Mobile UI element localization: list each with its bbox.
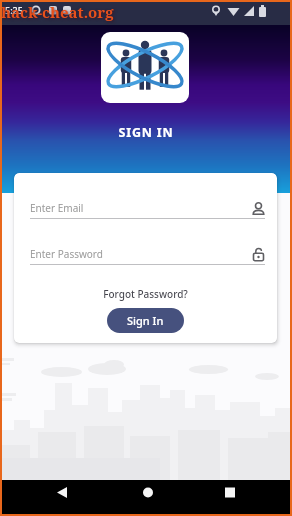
button[interactable]: Forgot Password? — [14, 287, 277, 301]
button[interactable] — [98, 480, 195, 516]
button[interactable] — [0, 480, 98, 516]
button[interactable]: Sign In — [107, 308, 184, 333]
staticText: SIGN IN — [0, 124, 292, 141]
button[interactable]: Enter Email — [30, 199, 265, 217]
staticText: 5:25 — [5, 4, 23, 16]
button[interactable]: Enter Password — [30, 245, 265, 263]
button[interactable] — [195, 480, 292, 516]
staticText: hack-cheat.org — [1, 2, 114, 22]
staticText: Sign In — [127, 313, 164, 328]
staticText: Enter Email — [30, 201, 84, 215]
staticText: Enter Password — [30, 247, 103, 261]
